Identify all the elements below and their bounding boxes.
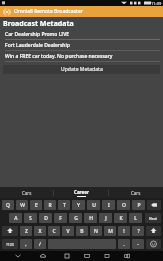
- staticText: I: [108, 202, 110, 209]
- staticText: /: [39, 241, 41, 248]
- staticText: Z: [25, 228, 28, 235]
- button[interactable]: Emoji: [146, 239, 161, 249]
- button[interactable]: Back: [13, 251, 23, 261]
- button[interactable]: ?: [132, 226, 144, 236]
- button[interactable]: Cars: [0, 187, 53, 198]
- button[interactable]: L: [129, 213, 142, 223]
- staticText: Career: [74, 189, 89, 195]
- button[interactable]: D: [39, 213, 52, 223]
- button[interactable]: G: [69, 213, 82, 223]
- staticText: Cars: [22, 190, 32, 196]
- staticText: R: [48, 202, 52, 209]
- button[interactable]: !: [118, 226, 130, 236]
- staticText: N: [94, 228, 98, 235]
- staticText: P: [137, 202, 141, 209]
- button[interactable]: Car Dealership Promo LIVE: [3, 31, 160, 40]
- staticText: ?: [137, 228, 140, 235]
- button[interactable]: Update Metadata: [3, 65, 160, 74]
- staticText: ?123: [6, 242, 14, 247]
- button[interactable]: Z: [20, 226, 32, 236]
- button[interactable]: Home: [38, 251, 48, 261]
- button[interactable]: Recents: [62, 251, 72, 261]
- button[interactable]: Shift: [2, 226, 18, 236]
- button[interactable]: Backspace: [147, 200, 161, 210]
- staticText: G: [74, 215, 78, 222]
- button[interactable]: Shift: [146, 226, 161, 236]
- button[interactable]: I: [102, 200, 115, 210]
- button[interactable]: Career: [54, 187, 108, 198]
- staticText: ,: [25, 241, 27, 248]
- staticText: Cars: [131, 190, 141, 196]
- staticText: X: [38, 228, 42, 235]
- staticText: S: [29, 215, 32, 222]
- button[interactable]: .: [118, 239, 130, 249]
- button[interactable]: Keyboard: [82, 251, 92, 261]
- button[interactable]: E: [30, 200, 42, 210]
- button[interactable]: Screenshot: [102, 251, 112, 261]
- staticText: K: [119, 215, 123, 222]
- button[interactable]: B: [76, 226, 88, 236]
- staticText: Car Dealership Promo LIVE: [5, 31, 69, 38]
- button[interactable]: M: [104, 226, 116, 236]
- staticText: 11:09: [151, 1, 162, 6]
- button[interactable]: H: [84, 213, 97, 223]
- button[interactable]: Y: [72, 200, 85, 210]
- button[interactable]: K: [114, 213, 127, 223]
- button[interactable]: J: [99, 213, 112, 223]
- button[interactable]: P: [132, 200, 145, 210]
- staticText: E: [35, 202, 38, 209]
- button[interactable]: Fort Lauderdale Dealership: [3, 42, 160, 51]
- staticText: Broadcast Metadata: [3, 19, 74, 29]
- staticText: Q: [6, 202, 10, 209]
- button[interactable]: Rotate: [122, 251, 132, 261]
- button[interactable]: Cars: [109, 187, 163, 198]
- button[interactable]: R: [44, 200, 56, 210]
- button[interactable]: V: [62, 226, 74, 236]
- staticText: Next: [149, 216, 157, 221]
- staticText: A: [14, 215, 18, 222]
- button[interactable]: C: [48, 226, 60, 236]
- staticText: T: [63, 202, 66, 209]
- staticText: !: [123, 228, 125, 235]
- staticText: D: [44, 215, 48, 222]
- button[interactable]: A: [9, 213, 22, 223]
- staticText: C: [52, 228, 56, 235]
- staticText: -: [137, 241, 139, 248]
- button[interactable]: O: [117, 200, 130, 210]
- button[interactable]: U: [87, 200, 100, 210]
- staticText: F: [59, 215, 62, 222]
- staticText: Win a FREE car today. No purchase necess…: [5, 53, 113, 60]
- staticText: M: [108, 228, 113, 235]
- button[interactable]: Win a FREE car today. No purchase necess…: [3, 53, 160, 62]
- button[interactable]: Next: [145, 213, 161, 223]
- button[interactable]: Q: [2, 200, 14, 210]
- staticText: V: [66, 228, 70, 235]
- staticText: H: [89, 215, 93, 222]
- staticText: Y: [77, 202, 80, 209]
- button[interactable]: ,: [20, 239, 32, 249]
- staticText: J: [105, 215, 107, 222]
- button[interactable]: X: [34, 226, 46, 236]
- button[interactable]: /: [34, 239, 46, 249]
- other: Broadcast: [3, 8, 11, 16]
- staticText: Fort Lauderdale Dealership: [5, 42, 70, 49]
- staticText: O: [122, 202, 126, 209]
- staticText: Omnia8 Remote Broadcaster: [14, 8, 84, 15]
- button[interactable]: ?123: [2, 239, 18, 249]
- staticText: Update Metadata: [61, 66, 103, 73]
- button[interactable]: T: [58, 200, 70, 210]
- staticText: L: [134, 215, 137, 222]
- staticText: .: [123, 241, 125, 248]
- button[interactable]: -: [132, 239, 144, 249]
- button[interactable]: N: [90, 226, 102, 236]
- staticText: B: [80, 228, 84, 235]
- button[interactable]: F: [54, 213, 67, 223]
- staticText: W: [20, 202, 25, 209]
- button[interactable]: S: [24, 213, 37, 223]
- button[interactable]: Broadcast: [0, 6, 163, 17]
- button[interactable]: W: [16, 200, 28, 210]
- staticText: U: [92, 202, 96, 209]
